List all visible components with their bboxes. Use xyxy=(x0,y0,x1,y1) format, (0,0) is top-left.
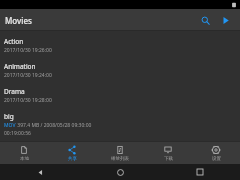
button[interactable]: Movies xyxy=(5,15,32,26)
staticText: 2017/10/30 19:26:00 xyxy=(4,47,52,54)
button[interactable]: Search xyxy=(196,11,214,29)
staticText: MOV xyxy=(4,122,16,129)
staticText: 397.4 MB / 2008/05/28 09:30:00 xyxy=(16,122,92,129)
button[interactable]: 设置 xyxy=(192,142,240,164)
staticText: Action xyxy=(4,37,24,46)
staticText: Movies xyxy=(5,15,32,26)
staticText: Animation xyxy=(4,62,36,71)
staticText: 本地 xyxy=(20,156,29,162)
staticText: 播放列表 xyxy=(111,156,129,162)
button[interactable]: Home xyxy=(80,164,160,180)
staticText: 下载 xyxy=(164,156,173,162)
button[interactable]: Animation xyxy=(0,59,240,84)
button[interactable]: big xyxy=(0,109,240,141)
button[interactable]: 下载 xyxy=(144,142,192,164)
staticText: 2017/10/30 19:24:00 xyxy=(4,72,52,79)
staticText: 2017/10/30 19:28:00 xyxy=(4,97,52,104)
staticText: 设置 xyxy=(212,156,221,162)
staticText: 00:19:00:56 xyxy=(4,130,31,137)
button[interactable]: 本地 xyxy=(0,142,48,164)
button[interactable]: Back xyxy=(0,164,80,180)
button[interactable]: Recents xyxy=(160,164,240,180)
staticText: 共享 xyxy=(68,156,77,162)
button[interactable]: Action xyxy=(0,34,240,59)
button[interactable]: 共享 xyxy=(48,142,96,164)
button[interactable]: 播放列表 xyxy=(96,142,144,164)
staticText: Drama xyxy=(4,87,25,96)
button[interactable]: Drama xyxy=(0,84,240,109)
button[interactable]: Play xyxy=(216,11,234,29)
staticText: big xyxy=(4,112,14,121)
